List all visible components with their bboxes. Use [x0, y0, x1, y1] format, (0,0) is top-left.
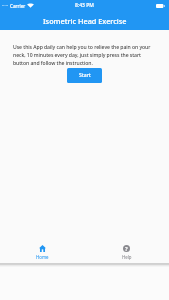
staticText: ? — [125, 245, 128, 252]
button[interactable]: Help — [84, 232, 169, 263]
staticText: Carrier — [10, 3, 26, 9]
staticText: 8:43 PM — [75, 2, 94, 9]
staticText: Isometric Head Exercise — [43, 16, 127, 26]
other: Home — [39, 245, 46, 252]
staticText: Help — [122, 254, 132, 260]
button[interactable]: Start — [67, 68, 102, 83]
other: Help — [123, 245, 130, 252]
button[interactable]: Home — [0, 232, 84, 263]
staticText: Use this App daily can help you to relie… — [13, 44, 151, 67]
staticText: Start — [79, 72, 91, 79]
staticText: Home — [36, 254, 49, 260]
